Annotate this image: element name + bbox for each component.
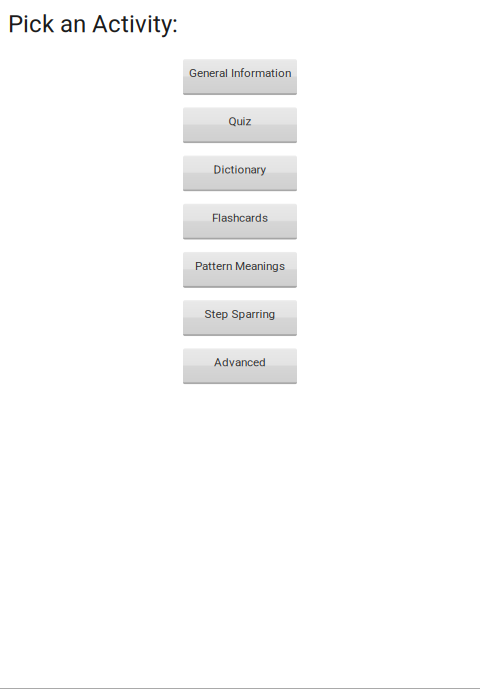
staticText: General Information xyxy=(189,66,291,80)
button[interactable]: General Information xyxy=(183,59,297,95)
button[interactable]: Step Sparring xyxy=(183,300,297,336)
staticText: Flashcards xyxy=(212,211,268,225)
button[interactable]: Pattern Meanings xyxy=(183,252,297,288)
button[interactable]: Flashcards xyxy=(183,204,297,240)
staticText: Pick an Activity: xyxy=(8,10,178,38)
button[interactable]: Dictionary xyxy=(183,155,297,191)
button[interactable]: Quiz xyxy=(183,107,297,143)
staticText: Pattern Meanings xyxy=(195,259,285,273)
staticText: Step Sparring xyxy=(204,307,275,321)
staticText: Dictionary xyxy=(213,163,266,176)
staticText: Quiz xyxy=(228,114,251,128)
staticText: Advanced xyxy=(214,355,266,369)
button[interactable]: Advanced xyxy=(183,348,297,384)
